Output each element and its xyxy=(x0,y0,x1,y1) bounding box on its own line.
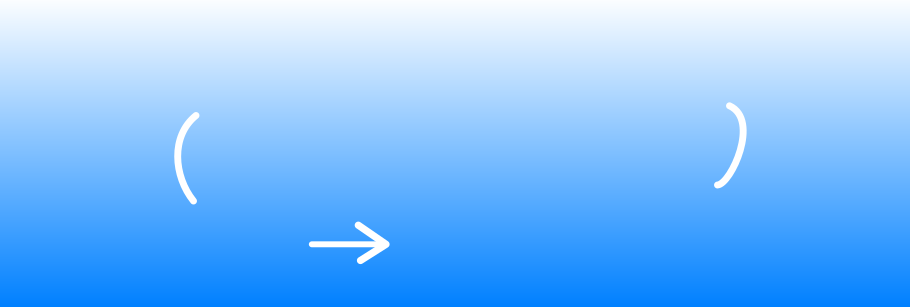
button[interactable]: Continue xyxy=(0,0,910,307)
